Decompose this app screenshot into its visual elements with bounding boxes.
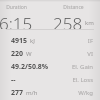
staticText: W/kg xyxy=(78,89,93,97)
staticText: kJ xyxy=(30,37,35,45)
button[interactable]: 4915 xyxy=(0,34,100,47)
staticText: 6:15 xyxy=(0,12,33,29)
staticText: El. Gain xyxy=(71,63,93,71)
staticText: 277 xyxy=(11,88,24,98)
button[interactable]: -- xyxy=(0,73,100,86)
button[interactable]: 277 xyxy=(0,86,100,99)
staticText: 220 xyxy=(11,49,24,59)
button[interactable]: Duration xyxy=(0,4,41,29)
button[interactable]: 220 xyxy=(0,47,100,60)
button[interactable]: 49.2/50.8% xyxy=(0,60,100,73)
staticText: 258 xyxy=(53,12,83,29)
staticText: VI xyxy=(87,50,93,58)
staticText: km xyxy=(85,19,94,27)
staticText: Duration xyxy=(6,4,27,11)
staticText: Distance xyxy=(63,4,84,11)
staticText: 4915 xyxy=(11,36,28,46)
staticText: W xyxy=(26,50,32,58)
staticText: El. Loss xyxy=(72,76,93,84)
staticText: m/h xyxy=(26,89,38,97)
staticText: IF xyxy=(87,37,93,45)
button[interactable]: Distance xyxy=(48,4,98,29)
staticText: -- xyxy=(11,75,16,85)
staticText: 49.2/50.8% xyxy=(11,62,49,72)
